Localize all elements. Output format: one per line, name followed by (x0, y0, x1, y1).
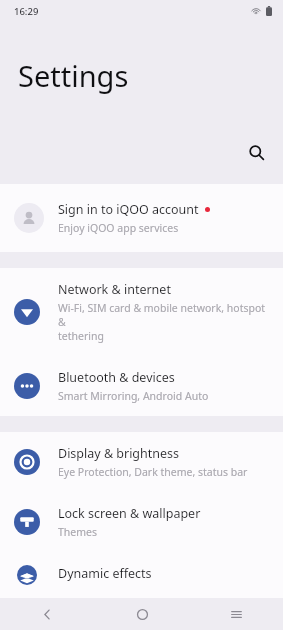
button[interactable]: Display & brightness (0, 432, 283, 492)
staticText: Lock screen & wallpaper (58, 505, 201, 522)
button[interactable]: Home (95, 598, 189, 630)
staticText: Smart Mirroring, Android Auto (58, 389, 209, 403)
button[interactable]: Recent apps (189, 598, 283, 630)
staticText: 16:29 (14, 5, 39, 18)
staticText: Settings (18, 56, 129, 95)
staticText: Network & internet (58, 281, 171, 298)
staticText: Themes (58, 525, 98, 539)
staticText: Wi-Fi, SIM card & mobile network, hotspo… (58, 301, 269, 343)
staticText: Bluetooth & devices (58, 369, 175, 386)
button[interactable]: Dynamic effects (0, 552, 283, 598)
button[interactable]: Back (0, 598, 95, 630)
staticText: Sign in to iQOO account (58, 201, 199, 218)
button[interactable]: Sign in to iQOO account (0, 184, 283, 252)
button[interactable]: Lock screen & wallpaper (0, 492, 283, 552)
staticText: Display & brightness (58, 445, 180, 462)
button[interactable]: Search (239, 135, 273, 169)
staticText: Dynamic effects (58, 565, 152, 582)
button[interactable]: Bluetooth & devices (0, 356, 283, 416)
staticText: Enjoy iQOO app services (58, 221, 179, 235)
button[interactable]: Network & internet (0, 268, 283, 356)
staticText: Eye Protection, Dark theme, status bar (58, 465, 248, 479)
